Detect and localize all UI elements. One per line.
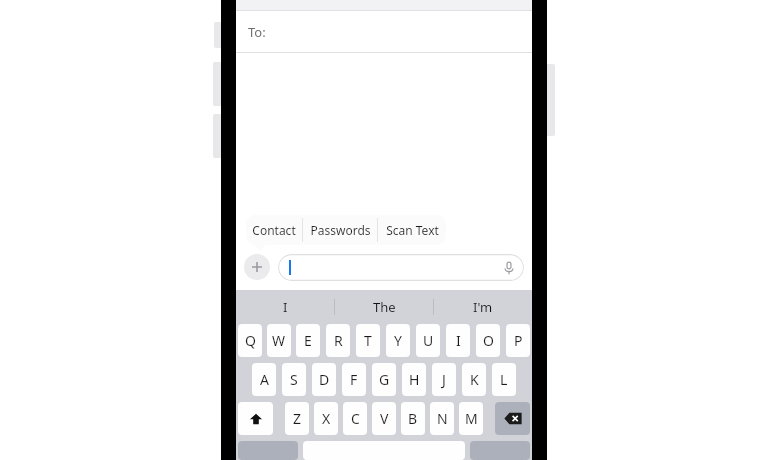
button[interactable]: Shift xyxy=(238,402,273,435)
button[interactable]: L xyxy=(492,363,516,396)
staticText: C xyxy=(351,409,360,428)
staticText: To: xyxy=(248,23,266,41)
button[interactable]: K xyxy=(462,363,486,396)
other: Power xyxy=(546,64,555,136)
button[interactable]: C xyxy=(343,402,367,435)
button[interactable]: Q xyxy=(238,324,262,357)
button[interactable]: I'm xyxy=(434,290,532,324)
button[interactable]: J xyxy=(432,363,456,396)
button[interactable]: Dictate xyxy=(278,254,524,281)
staticText: Z xyxy=(293,409,302,428)
button[interactable]: M xyxy=(459,402,483,435)
staticText: I xyxy=(456,331,461,350)
staticText: D xyxy=(319,370,330,389)
button[interactable]: O xyxy=(476,324,500,357)
staticText: S xyxy=(290,370,298,389)
button[interactable]: Scan Text xyxy=(378,215,446,245)
button[interactable]: Return xyxy=(470,441,530,460)
staticText: G xyxy=(379,370,390,389)
staticText: Scan Text xyxy=(386,222,439,238)
button[interactable]: R xyxy=(326,324,350,357)
staticText: Y xyxy=(394,331,402,350)
staticText: A xyxy=(260,370,269,389)
staticText: U xyxy=(423,331,434,350)
button[interactable]: I xyxy=(236,290,334,324)
button[interactable]: A xyxy=(252,363,276,396)
button[interactable]: Z xyxy=(285,402,309,435)
staticText: V xyxy=(380,409,389,428)
staticText: H xyxy=(409,370,420,389)
button[interactable]: Add attachment xyxy=(244,254,270,280)
staticText: E xyxy=(304,331,312,350)
button[interactable]: Numbers xyxy=(238,441,298,460)
staticText: I xyxy=(283,298,288,316)
button[interactable]: Contact xyxy=(246,215,302,245)
button[interactable]: S xyxy=(282,363,306,396)
staticText: R xyxy=(334,331,343,350)
button[interactable]: I xyxy=(446,324,470,357)
button[interactable]: B xyxy=(401,402,425,435)
staticText: The xyxy=(373,298,396,316)
button[interactable]: H xyxy=(402,363,426,396)
button[interactable]: U xyxy=(416,324,440,357)
staticText: Contact xyxy=(252,222,296,238)
button[interactable]: Passwords xyxy=(303,215,377,245)
staticText: L xyxy=(500,370,508,389)
other: Silent switch xyxy=(214,22,223,48)
staticText: O xyxy=(483,331,494,350)
staticText: P xyxy=(514,331,523,350)
button[interactable]: N xyxy=(430,402,454,435)
other: Volume up xyxy=(213,62,223,106)
button[interactable]: X xyxy=(314,402,338,435)
button[interactable]: T xyxy=(356,324,380,357)
staticText: N xyxy=(437,409,448,428)
button[interactable]: E xyxy=(296,324,320,357)
button[interactable]: Backspace xyxy=(495,402,530,435)
button[interactable]: Y xyxy=(386,324,410,357)
other: Dictate xyxy=(502,261,516,275)
button[interactable]: V xyxy=(372,402,396,435)
button[interactable]: The xyxy=(335,290,433,324)
button[interactable]: F xyxy=(342,363,366,396)
staticText: F xyxy=(350,370,358,389)
button[interactable]: P xyxy=(506,324,530,357)
staticText: I'm xyxy=(473,298,493,316)
staticText: K xyxy=(470,370,479,389)
staticText: M xyxy=(465,409,478,428)
button[interactable]: W xyxy=(267,324,291,357)
staticText: Q xyxy=(245,331,256,350)
staticText: J xyxy=(442,370,446,389)
staticText: B xyxy=(408,409,418,428)
button[interactable]: D xyxy=(312,363,336,396)
staticText: T xyxy=(364,331,372,350)
button[interactable]: G xyxy=(372,363,396,396)
staticText: X xyxy=(322,409,331,428)
other: Volume down xyxy=(213,114,223,158)
staticText: Passwords xyxy=(310,222,371,238)
staticText: W xyxy=(272,331,286,350)
